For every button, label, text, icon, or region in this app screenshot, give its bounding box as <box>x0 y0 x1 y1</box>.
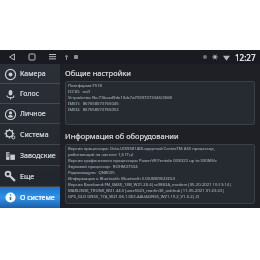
staticText: ICCID: null <box>68 89 90 95</box>
button[interactable]: Система <box>0 124 60 145</box>
staticText: Информация об оборудовании <box>65 131 179 141</box>
staticText: Радиомодуль: QN8035 <box>68 170 115 176</box>
button[interactable]: Голос <box>0 84 60 104</box>
staticText: Версия графического процессора: PowerVR … <box>68 158 217 164</box>
staticText: IMEI1: 867658073765045 <box>68 101 119 107</box>
staticText: Еще <box>20 172 35 182</box>
staticText: Общие настройки <box>65 68 131 78</box>
button[interactable]: Версия процессора: Octa-UIS9581A(8-ядерн… <box>65 144 255 204</box>
button[interactable]: Личное <box>0 104 60 124</box>
staticText: Платформа:TS18 <box>68 83 102 89</box>
staticText: MARLIN3E_TRUNK_W21.44.5|uwe5623_marlin3E… <box>68 188 225 194</box>
staticText: Устройство No:73bcad9de10dc7a70397073346… <box>68 95 173 101</box>
staticText: Версия процессора: Octa-UIS9581A(8-ядерн… <box>68 146 215 152</box>
button[interactable]: Recents <box>46 51 58 63</box>
button[interactable]: Home <box>26 51 38 63</box>
button[interactable]: Back <box>6 51 18 63</box>
staticText: Информация о Bluetooth: Bluetooth 5.0(UM… <box>68 176 176 182</box>
staticText: Камера <box>20 69 46 79</box>
staticText: Личное <box>20 109 46 119</box>
staticText: Система <box>20 130 49 140</box>
button[interactable]: О системе <box>0 187 60 208</box>
staticText: Звуковой процессор: ROHM27534 <box>68 164 138 170</box>
button[interactable]: Платформа:TS18 <box>65 81 255 125</box>
staticText: Заводские <box>20 151 56 161</box>
button[interactable]: Камера <box>0 64 60 84</box>
staticText: GPS_GLO GNSS_17A_W21.06.1.0E2-AAUAGNSS_W… <box>68 194 200 200</box>
staticText: 12:27 <box>235 52 256 63</box>
staticText: работающий на частоте 1,6 ГГц) <box>68 152 133 158</box>
button[interactable]: Заводские <box>0 145 60 166</box>
staticText: Версия Baseband:FM_BASE_18B_W21.20.4|sc9… <box>68 182 232 188</box>
staticText: Голос <box>20 89 40 99</box>
staticText: О системе <box>20 193 55 203</box>
button[interactable]: Еще <box>0 166 60 187</box>
staticText: IMEI2: 867658073765052 <box>68 107 119 113</box>
